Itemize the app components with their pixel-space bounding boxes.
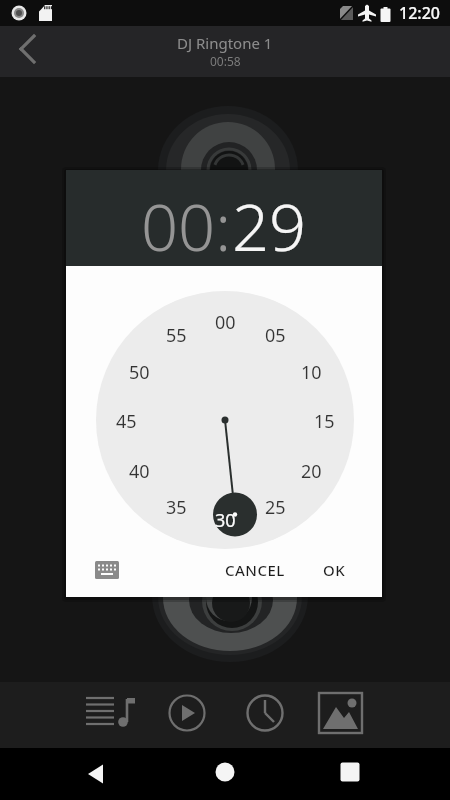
- staticText: 00: [215, 310, 236, 332]
- staticText: 10: [301, 360, 322, 382]
- staticText: CANCEL: [225, 560, 285, 580]
- staticText: 05: [265, 323, 286, 345]
- staticText: 00:58: [210, 53, 241, 69]
- staticText: 25: [265, 495, 286, 517]
- staticText: 20: [301, 459, 322, 481]
- button[interactable]: [86, 554, 128, 586]
- button[interactable]: [205, 752, 245, 792]
- staticText: 35: [166, 495, 187, 517]
- staticText: OK: [323, 560, 346, 580]
- staticText: 55: [166, 323, 187, 345]
- staticText: 40: [129, 459, 150, 481]
- button[interactable]: [75, 754, 115, 794]
- staticText: 29: [232, 182, 307, 271]
- staticText: 00:: [141, 182, 232, 271]
- button[interactable]: [162, 688, 212, 738]
- staticText: DJ Ringtone 1: [177, 33, 273, 53]
- button[interactable]: [316, 690, 366, 740]
- button[interactable]: [8, 29, 48, 69]
- staticText: 12:20: [399, 2, 440, 24]
- staticText: 50: [129, 360, 150, 382]
- staticText: 45: [116, 409, 137, 431]
- button[interactable]: [82, 690, 132, 740]
- button[interactable]: OK: [308, 550, 360, 590]
- button[interactable]: [240, 688, 290, 738]
- staticText: 30: [215, 508, 236, 530]
- button[interactable]: [330, 752, 370, 792]
- button[interactable]: CANCEL: [224, 550, 286, 590]
- staticText: 15: [314, 409, 335, 431]
